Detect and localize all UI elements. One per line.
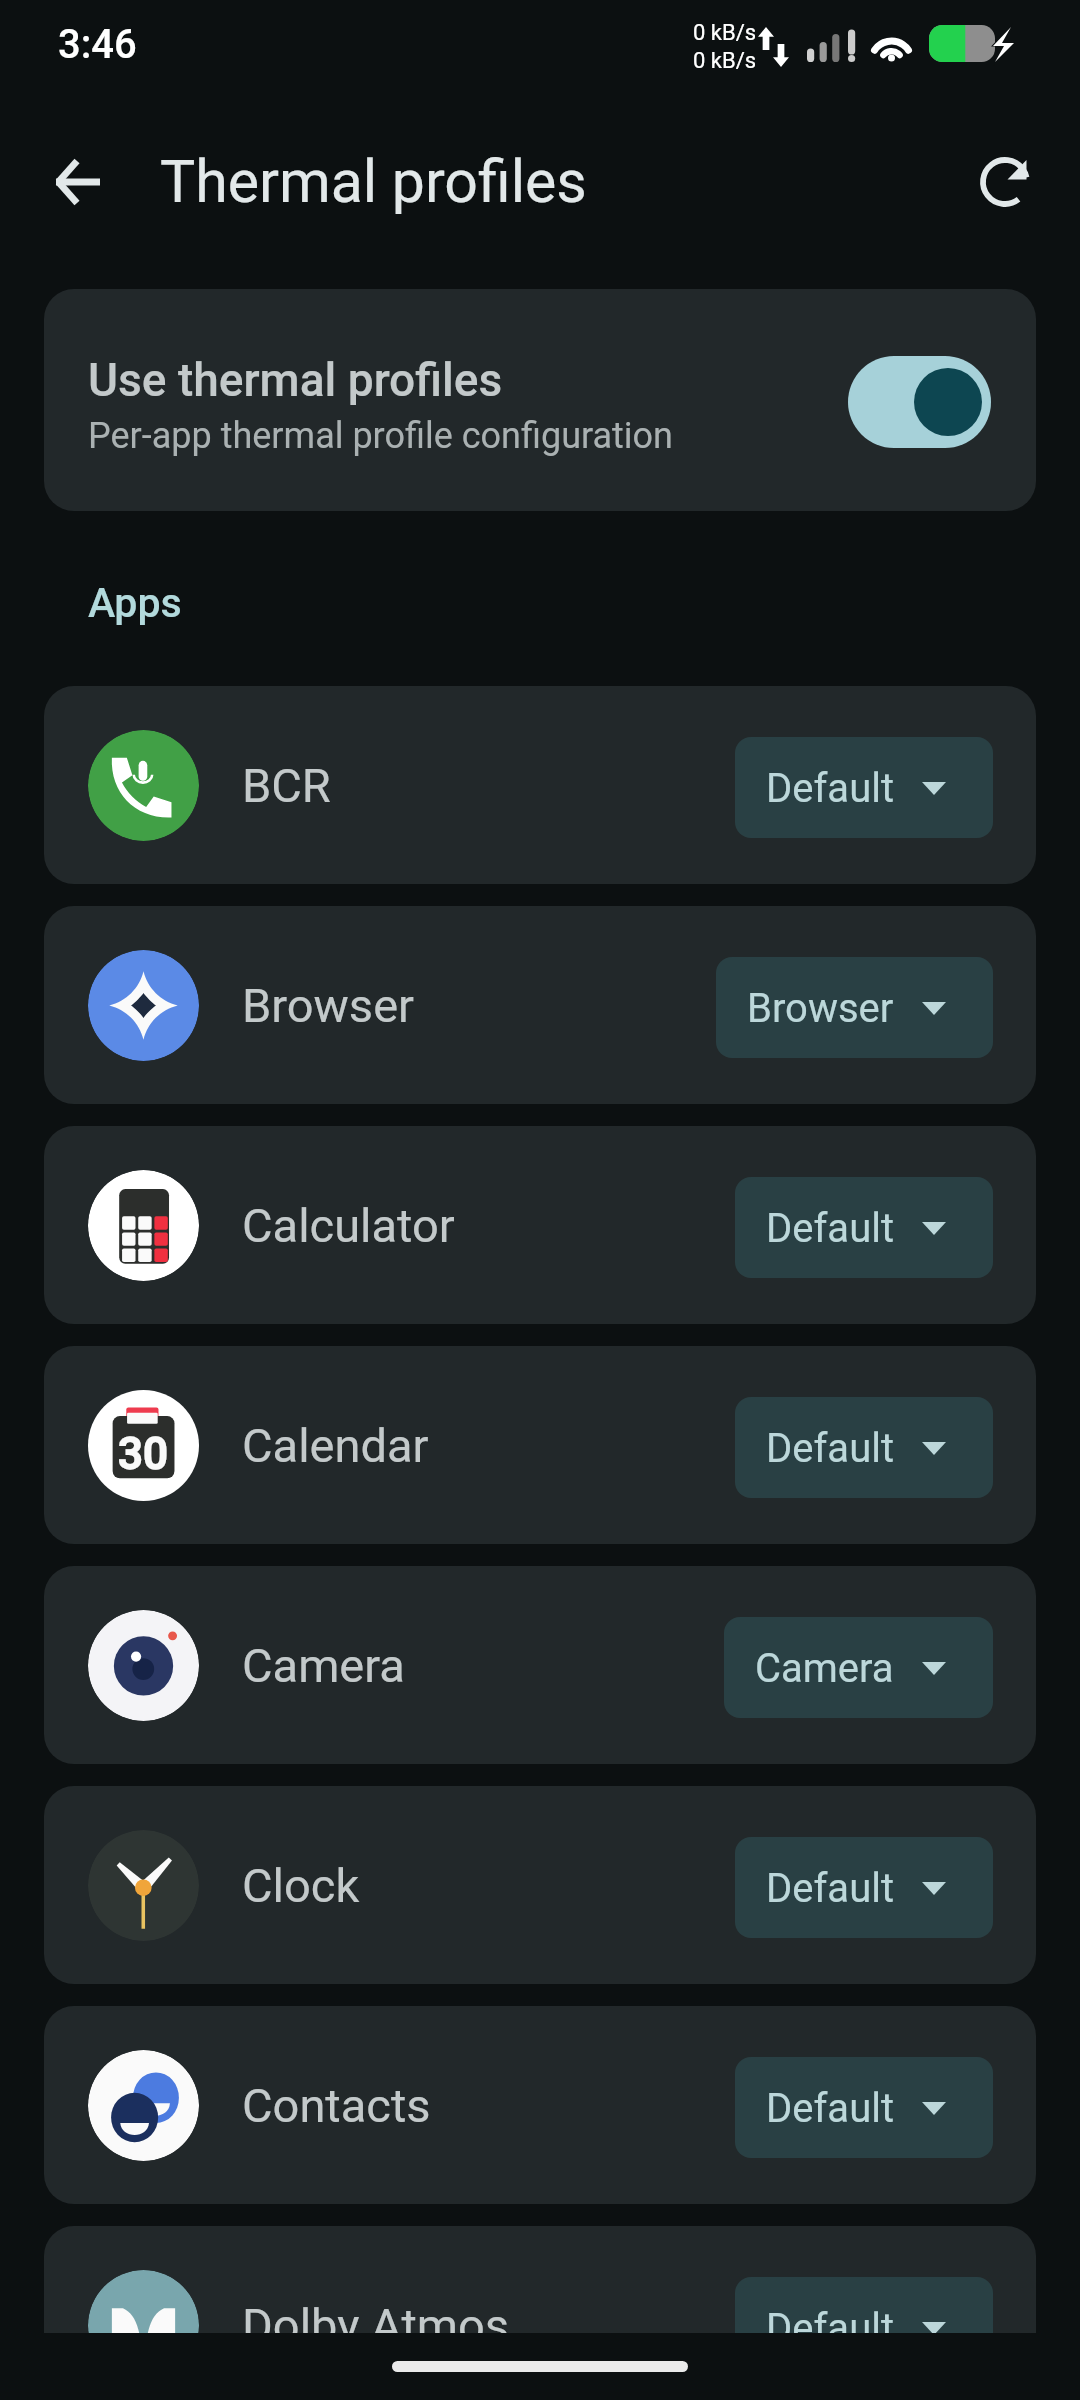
button[interactable]: Default [735, 2277, 993, 2378]
staticText: 0 kB/s [693, 48, 757, 74]
staticText: 0 kB/s [693, 20, 757, 46]
button[interactable]: Camera [724, 1617, 993, 1718]
button[interactable]: Calculator [44, 1126, 1036, 1324]
button[interactable]: Default [735, 737, 993, 838]
button[interactable]: Default [735, 1397, 993, 1498]
button[interactable]: Browser [44, 906, 1036, 1104]
staticText: Thermal profiles [160, 147, 587, 216]
button[interactable]: Camera [44, 1566, 1036, 1764]
staticText: 3:46 [58, 21, 137, 68]
staticText: Browser [242, 978, 414, 1033]
staticText: Clock [242, 1858, 360, 1913]
button[interactable]: Contacts [44, 2006, 1036, 2204]
staticText: Calendar [242, 1418, 429, 1473]
staticText: BCR [242, 758, 331, 813]
staticText: Default [766, 2305, 894, 2352]
staticText: Default [766, 1425, 894, 1472]
staticText: Use thermal profiles [88, 353, 503, 407]
staticText: Dolby Atmos [242, 2298, 510, 2353]
staticText: Contacts [242, 2078, 431, 2133]
staticText: Apps [88, 579, 182, 627]
staticText: 30 [118, 1428, 169, 1480]
button[interactable]: Default [735, 1177, 993, 1278]
button[interactable]: 30 [44, 1346, 1036, 1544]
staticText: Camera [755, 1645, 894, 1692]
button[interactable]: Back [30, 134, 126, 230]
staticText: Calculator [242, 1198, 455, 1253]
staticText: Per-app thermal profile configuration [88, 415, 673, 457]
staticText: Default [766, 1205, 894, 1252]
button[interactable]: Dolby Atmos [44, 2226, 1036, 2400]
button[interactable]: Use thermal profiles [44, 289, 1036, 511]
button[interactable]: BCR [44, 686, 1036, 884]
staticText: Camera [242, 1638, 405, 1693]
staticText: Browser [747, 985, 894, 1032]
button[interactable]: Clock [44, 1786, 1036, 1984]
button[interactable]: Refresh [957, 134, 1053, 230]
staticText: Default [766, 1865, 894, 1912]
button[interactable]: Browser [716, 957, 993, 1058]
staticText: Default [766, 765, 894, 812]
button[interactable]: Default [735, 2057, 993, 2158]
staticText: Default [766, 2085, 894, 2132]
button[interactable]: Default [735, 1837, 993, 1938]
